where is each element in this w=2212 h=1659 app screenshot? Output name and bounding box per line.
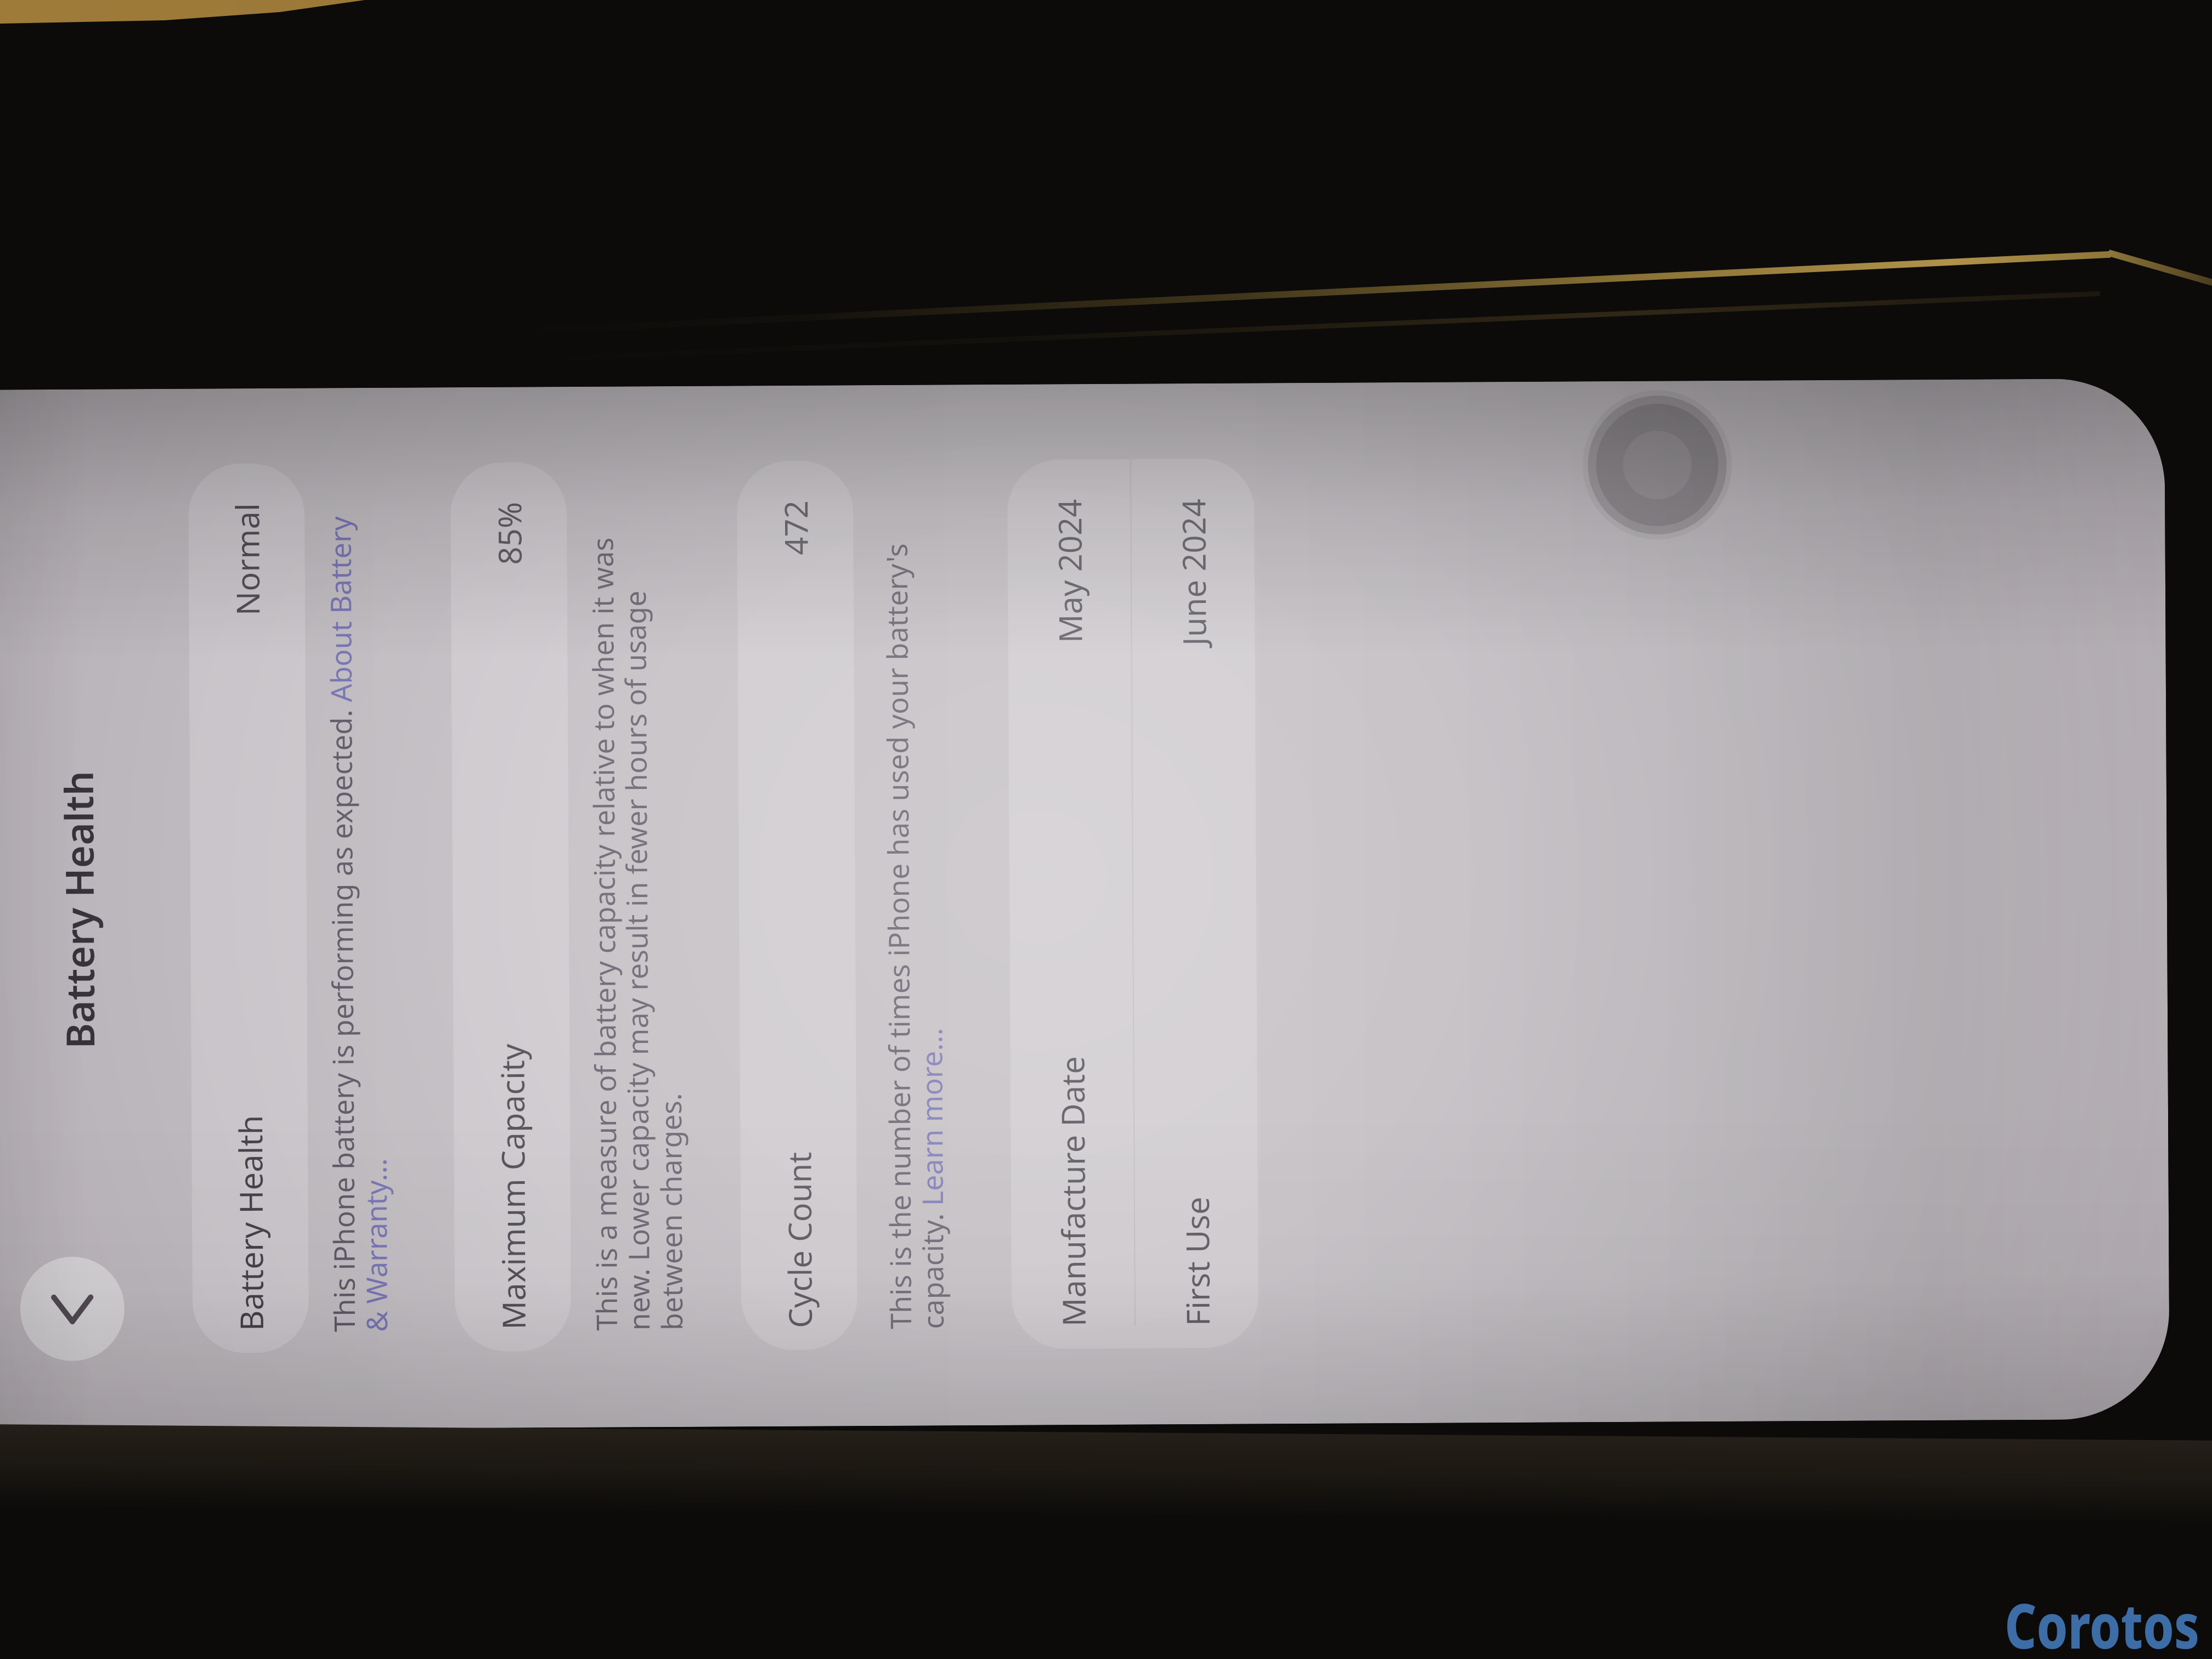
button[interactable]: This iPhone battery is performing as exp… — [320, 502, 396, 1332]
button[interactable]: Maximum Capacity — [450, 462, 571, 1352]
staticText: First Use — [1175, 1196, 1219, 1326]
staticText: Maximum Capacity — [490, 1044, 535, 1330]
button[interactable]: Back — [20, 1256, 125, 1361]
staticText: This is a measure of battery capacity re… — [582, 501, 691, 1331]
button[interactable]: First Use — [1131, 458, 1259, 1348]
button[interactable]: Cycle Count — [737, 460, 858, 1350]
button[interactable]: Manufacture Date — [1007, 458, 1259, 1349]
staticText: Corotos — [2005, 1582, 2199, 1659]
button[interactable]: Manufacture Date — [1007, 459, 1135, 1349]
staticText: Manufacture Date — [1050, 1056, 1095, 1327]
button[interactable]: Battery Health — [188, 463, 309, 1353]
button[interactable]: This is the number of times iPhone has u… — [876, 499, 952, 1329]
staticText: This is the number of times iPhone has u… — [876, 499, 952, 1329]
staticText: 472 — [774, 500, 817, 555]
staticText: This iPhone battery is performing as exp… — [320, 502, 396, 1332]
staticText: May 2024 — [1047, 499, 1091, 643]
staticText: 85% — [487, 502, 531, 565]
staticText: Battery Health — [51, 770, 106, 1049]
staticText: June 2024 — [1171, 498, 1215, 646]
staticText: Battery Health — [228, 1115, 273, 1331]
staticText: Cycle Count — [777, 1151, 821, 1328]
staticText: Normal — [225, 503, 269, 616]
